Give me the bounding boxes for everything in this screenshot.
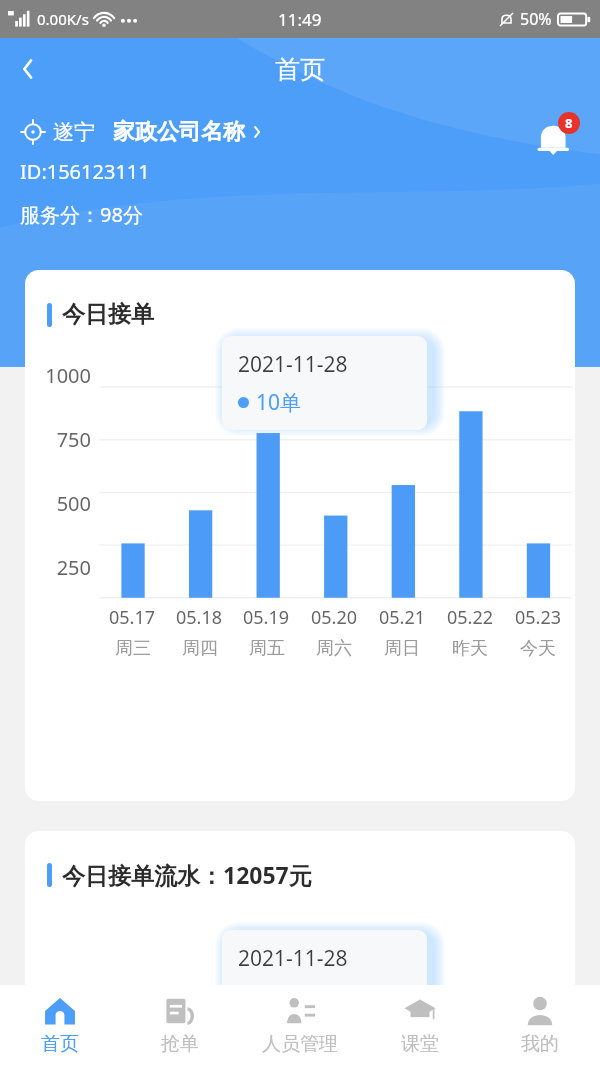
button[interactable]: 抢单 [120,985,240,1067]
staticText: 500 [29,490,91,517]
staticText: 家政公司名称 [113,118,245,146]
staticText: 抢单 [161,1032,199,1056]
staticText: 首页 [275,54,325,85]
staticText: 50% [520,8,552,30]
staticText: 05.20 [311,605,358,630]
staticText: 周四 [182,637,218,660]
staticText: 课堂 [401,1032,439,1056]
staticText: 05.23 [515,605,562,630]
staticText: 人员管理 [262,1032,338,1056]
staticText: 服务分：98分 [20,201,143,228]
staticText: 周三 [115,637,151,660]
staticText: 8 [565,114,573,132]
staticText: 1000 [29,362,91,389]
staticText: 250 [29,554,91,581]
staticText: 11:49 [278,8,322,31]
staticText: 今日接单流水：12057元 [62,859,312,890]
staticText: 05.22 [447,605,494,630]
staticText: 周日 [384,637,420,660]
button[interactable]: 今日接单 [25,270,575,801]
staticText: ID:156123111 [20,158,150,185]
button[interactable]: 课堂 [360,985,480,1067]
button[interactable]: 首页 [0,985,120,1067]
staticText: 2021-11-28 [238,944,348,973]
staticText: 首页 [41,1032,79,1056]
staticText: 0.00K/s [37,9,89,29]
staticText: 750 [29,426,91,453]
staticText: 遂宁 [53,119,95,145]
button[interactable]: Notifications [528,112,582,166]
staticText: 05.17 [109,605,156,630]
staticText: 10单 [256,388,302,417]
button[interactable]: 今日接单流水：12057元 [25,831,575,1067]
button[interactable]: 家政公司名称 [113,118,266,146]
button[interactable]: 人员管理 [240,985,360,1067]
staticText: 今天 [520,637,556,660]
staticText: 2021-11-28 [238,350,348,379]
staticText: 周五 [249,637,285,660]
staticText: 我的 [521,1032,559,1056]
staticText: 昨天 [452,637,488,660]
staticText: 周六 [316,637,352,660]
staticText: 今日接单 [62,300,154,329]
button[interactable]: Back [0,40,58,98]
staticText: 05.19 [243,605,290,630]
staticText: 05.18 [176,605,223,630]
button[interactable]: 我的 [480,985,600,1067]
staticText: 05.21 [379,605,426,630]
